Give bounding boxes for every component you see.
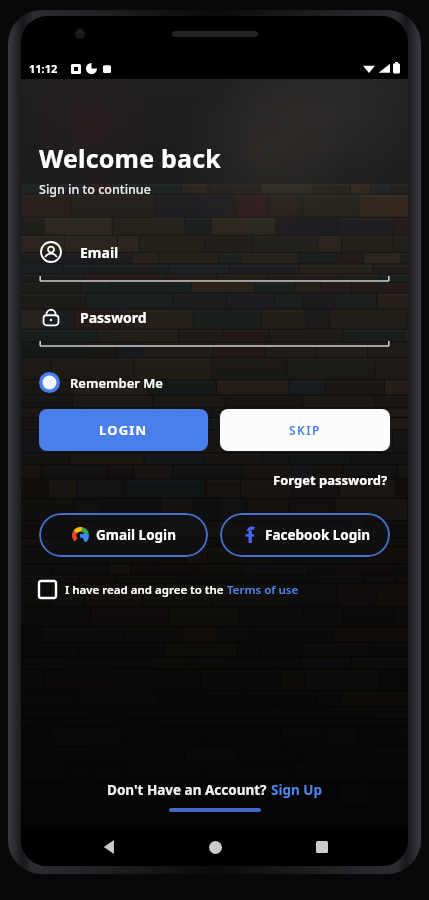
staticText: Facebook Login bbox=[265, 526, 371, 544]
button[interactable]: Facebook Login bbox=[220, 513, 390, 557]
button[interactable]: Recent apps bbox=[307, 832, 337, 862]
staticText: Welcome back bbox=[39, 141, 221, 175]
button[interactable]: Back bbox=[95, 832, 125, 862]
staticText: SKIP bbox=[289, 422, 321, 438]
button[interactable]: LOGIN bbox=[39, 409, 208, 451]
staticText: Sign in to continue bbox=[39, 181, 151, 198]
staticText: Don't Have an Account? bbox=[107, 781, 271, 799]
staticText: Email bbox=[80, 243, 119, 262]
button[interactable]: Remember Me bbox=[39, 370, 163, 395]
button[interactable]: Gmail Login bbox=[39, 513, 208, 557]
staticText: Remember Me bbox=[70, 374, 163, 392]
button[interactable]: Password bbox=[39, 305, 390, 348]
staticText: Sign Up bbox=[271, 781, 323, 799]
staticText: Gmail Login bbox=[96, 526, 176, 544]
button[interactable]: Email bbox=[39, 240, 390, 283]
button[interactable]: SKIP bbox=[220, 409, 390, 451]
button[interactable]: Don't Have an Account? bbox=[103, 779, 327, 801]
staticText: Terms of use bbox=[227, 582, 299, 598]
staticText: 11:12 bbox=[29, 61, 58, 76]
button[interactable]: Forget password? bbox=[271, 469, 390, 491]
button[interactable]: Home bbox=[200, 832, 230, 862]
button[interactable]: I have read and agree to the bbox=[39, 579, 299, 600]
staticText: LOGIN bbox=[99, 421, 148, 439]
staticText: Password bbox=[80, 308, 147, 327]
staticText: I have read and agree to the bbox=[65, 582, 227, 598]
